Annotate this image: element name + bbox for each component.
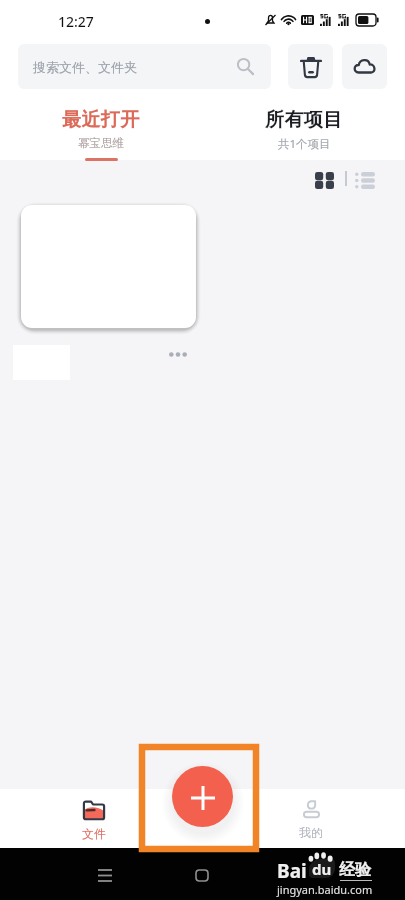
- staticText: 文件: [82, 826, 106, 841]
- staticText: jingyan.baidu.com: [277, 882, 373, 897]
- staticText: 12:27: [58, 12, 94, 31]
- button[interactable]: 最近打开: [30, 108, 172, 164]
- button[interactable]: More options: [163, 341, 193, 367]
- staticText: du: [312, 859, 332, 878]
- button[interactable]: List view: [350, 166, 379, 194]
- button[interactable]: Cloud storage: [342, 44, 387, 89]
- button[interactable]: Home: [182, 855, 222, 895]
- staticText: 经验: [339, 860, 371, 880]
- staticText: 我的: [299, 825, 323, 840]
- staticText: Bai: [277, 858, 307, 884]
- button[interactable]: Grid view: [310, 166, 339, 194]
- staticText: 所有项目: [265, 108, 343, 132]
- staticText: 搜索文件、文件夹: [33, 59, 137, 75]
- button[interactable]: Add new file: [172, 766, 233, 827]
- staticText: 幂宝思维: [78, 136, 124, 150]
- button[interactable]: 文件: [54, 789, 134, 848]
- button[interactable]: Delete: [288, 44, 333, 89]
- button[interactable]: 所有项目: [233, 108, 375, 164]
- button[interactable]: 搜索文件、文件夹: [18, 44, 271, 89]
- button[interactable]: Recent apps: [85, 855, 125, 895]
- staticText: 共1个项目: [278, 136, 331, 152]
- staticText: 最近打开: [62, 108, 140, 132]
- button[interactable]: 我的: [271, 789, 351, 848]
